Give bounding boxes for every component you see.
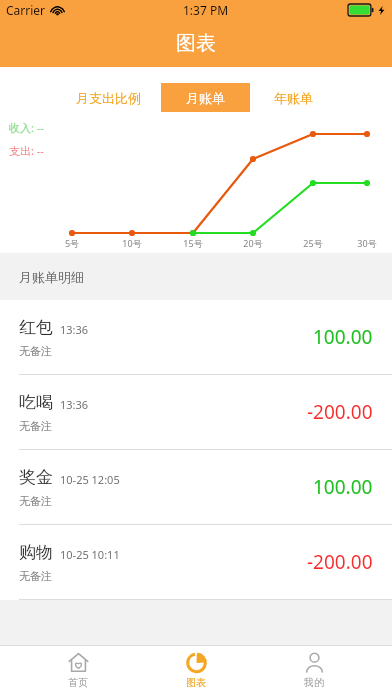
staticText: 10-25 12:05 [60, 472, 120, 487]
staticText: 购物 [19, 542, 53, 563]
staticText: 图表 [176, 31, 216, 56]
staticText: 10-25 10:11 [60, 547, 120, 562]
staticText: 图表 [186, 676, 206, 689]
staticText: 吃喝 [19, 392, 53, 413]
staticText: 20号 [238, 237, 268, 249]
staticText: 无备注 [19, 569, 52, 583]
staticText: 30号 [352, 237, 382, 249]
staticText: 15号 [178, 237, 208, 249]
button[interactable]: 首页 [38, 645, 118, 696]
staticText: 月账单 [186, 90, 225, 106]
staticText: 首页 [68, 676, 88, 689]
button[interactable]: 我的 [274, 645, 354, 696]
staticText: 年账单 [274, 90, 313, 106]
staticText: 无备注 [19, 344, 52, 358]
staticText: 25号 [298, 237, 328, 249]
staticText: 月账单明细 [19, 269, 84, 285]
button[interactable]: 年账单 [250, 83, 337, 112]
staticText: 13:36 [60, 322, 89, 337]
staticText: 10号 [117, 237, 147, 249]
staticText: 1:37 PM [183, 2, 229, 18]
button[interactable]: 吃喝 [0, 375, 392, 450]
staticText: Carrier [6, 2, 46, 18]
staticText: 我的 [304, 676, 324, 689]
button[interactable]: 月账单 [162, 83, 249, 112]
button[interactable]: 图表 [156, 645, 236, 696]
staticText: -200.00 [307, 549, 373, 575]
staticText: 奖金 [19, 467, 53, 488]
staticText: 无备注 [19, 494, 52, 508]
staticText: 100.00 [313, 324, 373, 350]
staticText: 5号 [57, 237, 87, 249]
staticText: 无备注 [19, 419, 52, 433]
button[interactable]: 红包 [0, 300, 392, 375]
staticText: 支出: -- [9, 143, 44, 158]
staticText: 红包 [19, 317, 53, 338]
button[interactable]: 月支出比例 [55, 83, 161, 112]
button[interactable]: 购物 [0, 525, 392, 600]
staticText: -200.00 [307, 399, 373, 425]
staticText: 月支出比例 [76, 90, 141, 106]
staticText: 13:36 [60, 397, 89, 412]
staticText: 收入: -- [9, 120, 44, 135]
staticText: 100.00 [313, 474, 373, 500]
button[interactable]: 奖金 [0, 450, 392, 525]
